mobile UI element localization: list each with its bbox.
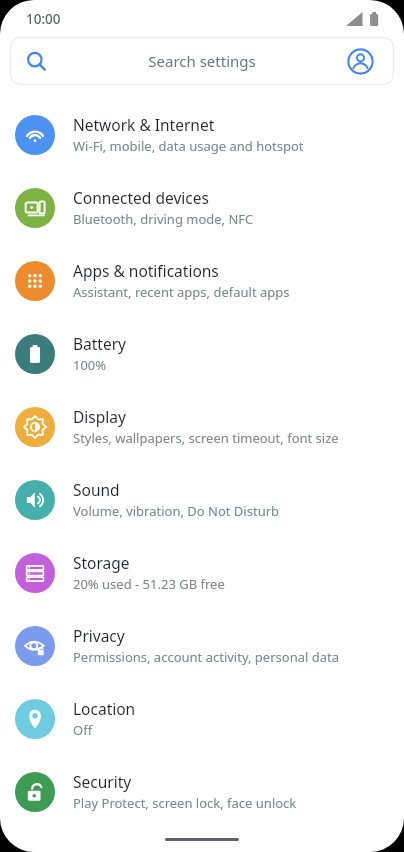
button[interactable]: Search xyxy=(10,37,394,85)
staticText: Privacy xyxy=(73,625,125,646)
button[interactable]: Network & Internet xyxy=(0,98,404,171)
staticText: Off xyxy=(73,721,93,739)
staticText: Network & Internet xyxy=(73,114,215,135)
button[interactable]: Battery xyxy=(0,317,404,390)
button[interactable]: Storage xyxy=(0,536,404,609)
button[interactable]: Connected devices xyxy=(0,171,404,244)
button[interactable]: Sound xyxy=(0,463,404,536)
staticText: Location xyxy=(73,698,136,719)
staticText: Wi-Fi, mobile, data usage and hotspot xyxy=(73,137,304,155)
staticText: Bluetooth, driving mode, NFC xyxy=(73,210,254,228)
staticText: Styles, wallpapers, screen timeout, font… xyxy=(73,429,339,447)
staticText: Volume, vibration, Do Not Disturb xyxy=(73,502,280,520)
staticText: 20% used - 51.23 GB free xyxy=(73,575,225,593)
staticText: 10:00 xyxy=(26,10,61,28)
staticText: 100% xyxy=(73,356,107,374)
button[interactable]: Privacy xyxy=(0,609,404,682)
button[interactable]: Account xyxy=(347,48,374,75)
staticText: Connected devices xyxy=(73,187,209,208)
staticText: Sound xyxy=(73,479,120,500)
staticText: Play Protect, screen lock, face unlock xyxy=(73,794,297,812)
staticText: Search settings xyxy=(148,51,256,71)
button[interactable]: Display xyxy=(0,390,404,463)
button[interactable]: Apps & notifications xyxy=(0,244,404,317)
staticText: Battery xyxy=(73,333,127,354)
button[interactable]: Security xyxy=(0,755,404,828)
button[interactable]: Location xyxy=(0,682,404,755)
staticText: Display xyxy=(73,406,126,427)
other: Search xyxy=(26,51,47,72)
staticText: Assistant, recent apps, default apps xyxy=(73,283,290,301)
staticText: Storage xyxy=(73,552,130,573)
staticText: Permissions, account activity, personal … xyxy=(73,648,339,666)
staticText: Security xyxy=(73,771,132,792)
staticText: Apps & notifications xyxy=(73,260,219,281)
